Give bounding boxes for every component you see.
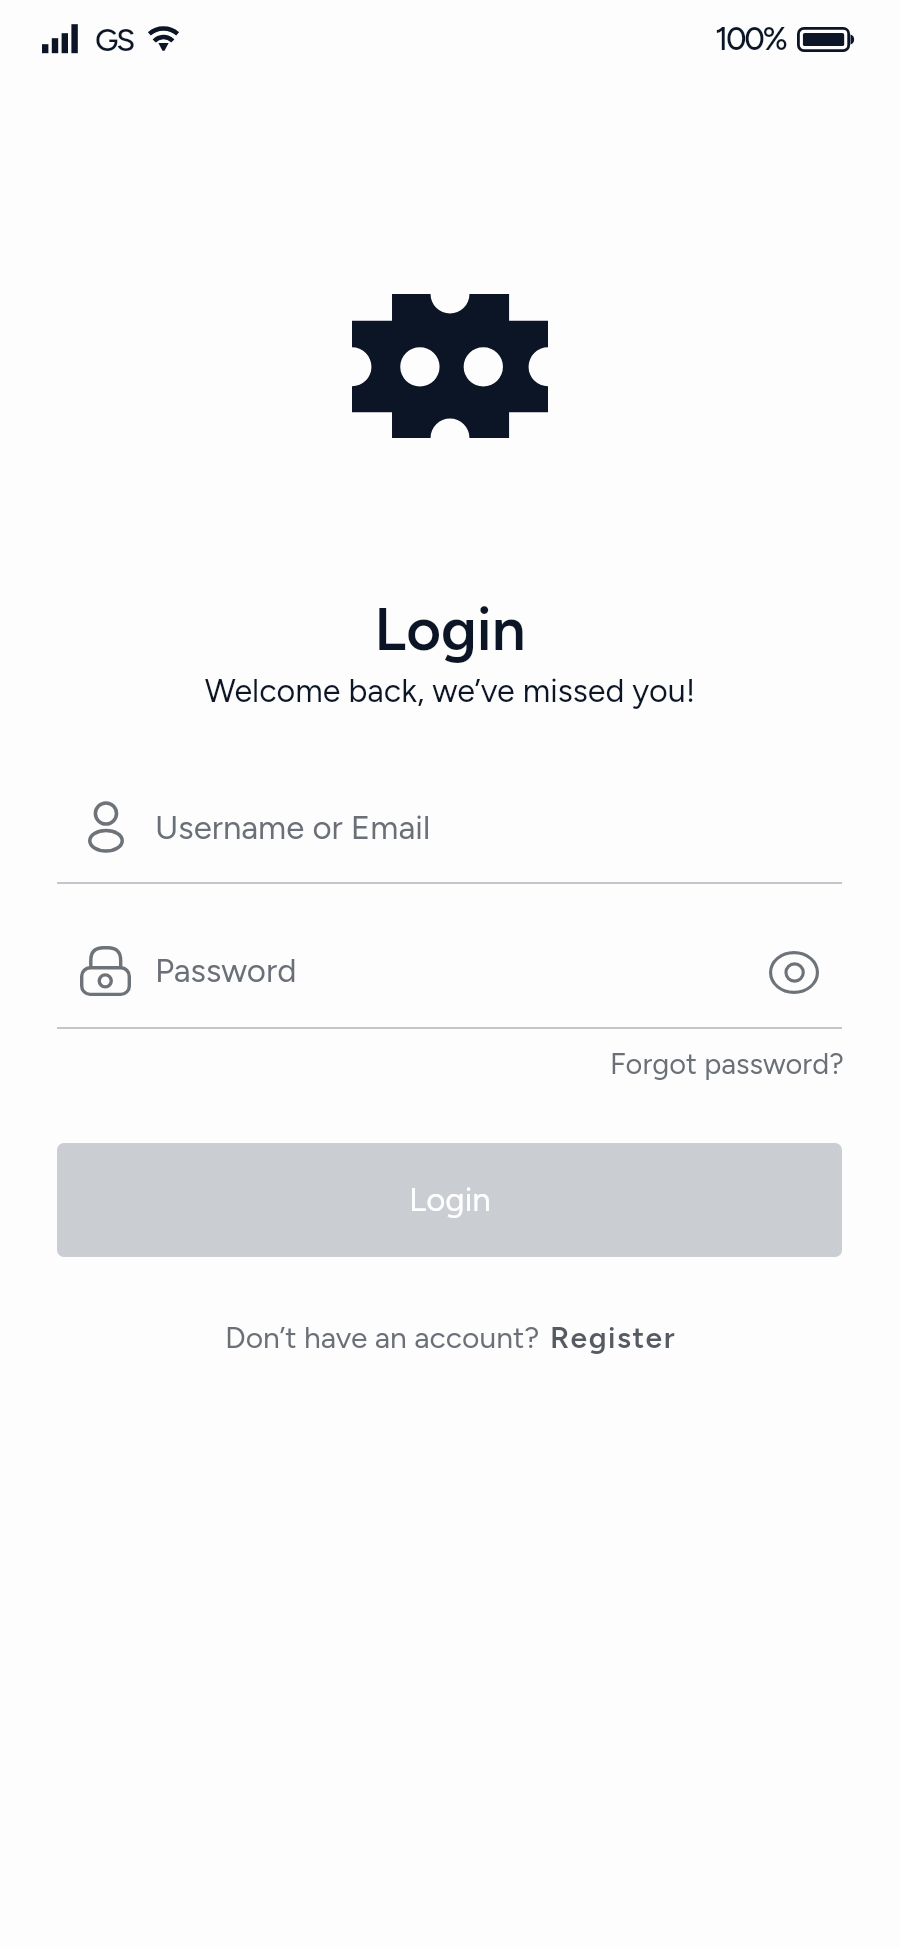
button[interactable]: Login — [57, 1143, 842, 1257]
button[interactable]: Show password — [756, 935, 831, 1010]
button[interactable]: Register — [544, 1313, 684, 1361]
other: Battery full — [797, 27, 856, 52]
button[interactable]: Password — [57, 934, 842, 1009]
staticText: Username or Email — [155, 808, 431, 848]
staticText: Forgot password? — [610, 1046, 844, 1081]
button[interactable]: Username or Email — [57, 789, 842, 864]
staticText: Password — [155, 951, 297, 991]
other: Wi-Fi — [148, 25, 179, 52]
staticText: GS — [95, 22, 134, 59]
staticText: Login — [409, 1180, 491, 1220]
staticText: Register — [550, 1319, 677, 1355]
staticText: Login — [0, 593, 900, 665]
button[interactable]: Forgot password? — [592, 1039, 844, 1087]
staticText: Don’t have an account? — [225, 1319, 540, 1355]
staticText: 100% — [715, 20, 786, 58]
staticText: Welcome back, we’ve missed you! — [0, 671, 900, 710]
other: Cellular signal — [42, 24, 79, 54]
